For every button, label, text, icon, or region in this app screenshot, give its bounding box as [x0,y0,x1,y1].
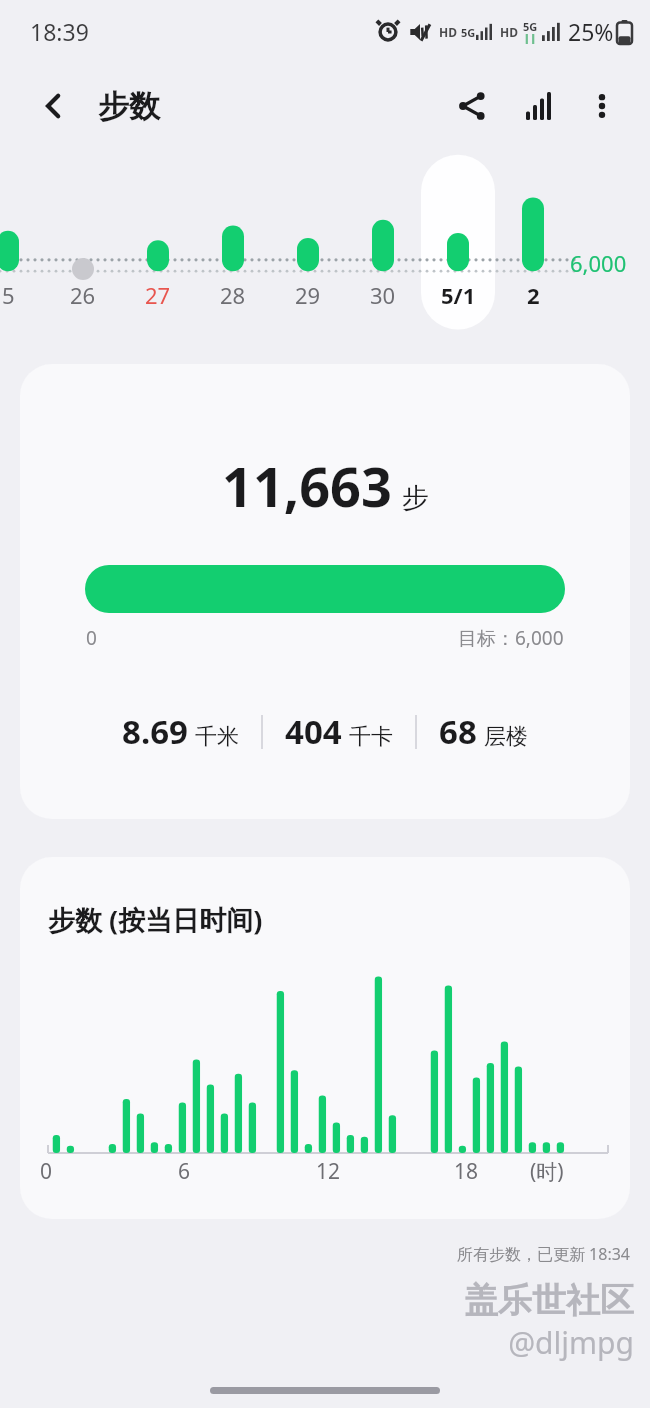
button[interactable]: More options [576,80,628,132]
button[interactable]: 步数 (按当日时间) [20,857,630,1219]
staticText: 25% [568,16,614,47]
button[interactable]: 5 [0,275,45,315]
staticText: (时) [530,1157,564,1186]
staticText: 层楼 [484,723,528,751]
button[interactable]: Back [32,84,76,128]
staticText: 2 [527,280,540,310]
staticText: HD [439,24,457,40]
staticText: 68 [439,709,477,754]
staticText: 0 [40,1157,53,1186]
button[interactable]: 68 [439,709,528,754]
staticText: 12 [316,1157,341,1186]
button[interactable]: 2 [496,275,570,315]
staticText: 目标：6,000 [458,625,564,651]
button[interactable]: 26 [46,275,120,315]
staticText: 千卡 [349,723,393,751]
button[interactable]: 8.69 [122,709,239,754]
staticText: 404 [285,709,342,754]
button[interactable]: Share [446,80,498,132]
staticText: 千米 [195,723,239,751]
staticText: 6,000 [570,248,627,278]
button[interactable]: 30 [346,275,420,315]
button[interactable]: Chart [514,80,566,132]
button[interactable]: 5/1 [421,275,495,315]
staticText: 5G [461,25,476,40]
staticText: 8.69 [122,709,188,754]
staticText: 6 [178,1157,191,1186]
staticText: HD [500,24,518,40]
button[interactable]: 28 [196,275,270,315]
staticText: 步数 (按当日时间) [48,901,263,938]
staticText: 5/1 [441,280,476,310]
staticText: @dljmpg [0,1322,634,1363]
staticText: 盖乐世社区 [0,1279,634,1322]
staticText: 18 [454,1157,479,1186]
button[interactable]: 404 [285,709,393,754]
staticText: 18:39 [30,16,89,47]
button[interactable]: 29 [271,275,345,315]
staticText: 30 [370,280,396,310]
staticText: 5 [2,280,15,310]
staticText: 11,663 [222,449,392,523]
staticText: 0 [86,625,97,651]
staticText: 29 [295,280,321,310]
staticText: 步数 [98,87,160,126]
staticText: 28 [220,280,246,310]
staticText: 26 [70,280,96,310]
staticText: 所有步数，已更新 18:34 [0,1243,630,1265]
staticText: 步 [402,481,429,515]
button[interactable]: 27 [121,275,195,315]
staticText: 5G [523,19,538,34]
button[interactable]: 11,663 [20,364,630,819]
staticText: 27 [145,280,171,310]
